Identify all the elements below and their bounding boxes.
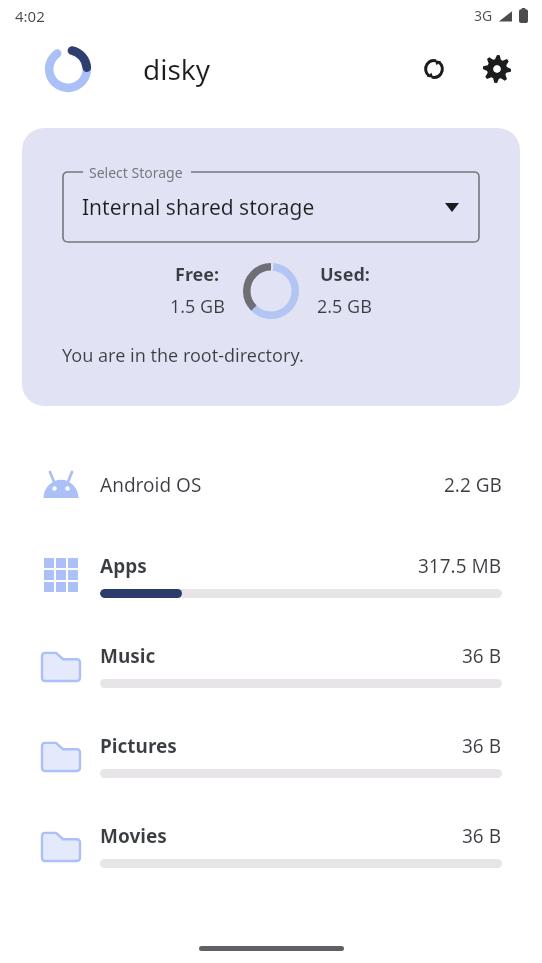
staticText: Internal shared storage	[82, 193, 315, 222]
staticText: Pictures	[100, 733, 177, 759]
staticText: 317.5 MB	[418, 553, 502, 579]
staticText: You are in the root-directory.	[62, 343, 304, 368]
button[interactable]: Apps	[0, 530, 542, 620]
staticText: Free:	[175, 262, 220, 287]
staticText: 36 B	[462, 733, 502, 759]
staticText: Used:	[320, 262, 370, 287]
staticText: 2.5 GB	[317, 294, 372, 319]
button[interactable]: Music	[0, 620, 542, 710]
button[interactable]: Refresh	[411, 46, 457, 92]
staticText: 36 B	[462, 823, 502, 849]
staticText: Movies	[100, 823, 167, 849]
staticText: Android OS	[100, 472, 202, 498]
staticText: Apps	[100, 553, 147, 579]
staticText: 1.5 GB	[170, 294, 225, 319]
button[interactable]: Android OS	[0, 440, 542, 530]
button[interactable]: Movies	[0, 800, 542, 890]
button[interactable]: Select Storage	[63, 172, 479, 242]
staticText: 3G	[474, 6, 493, 25]
staticText: Music	[100, 643, 156, 669]
staticText: 2.2 GB	[444, 472, 502, 498]
staticText: 36 B	[462, 643, 502, 669]
staticText: Select Storage	[89, 163, 183, 182]
button[interactable]: Select Storage	[22, 128, 520, 406]
button[interactable]: Pictures	[0, 710, 542, 800]
staticText: disky	[143, 50, 211, 88]
staticText: 4:02	[15, 6, 45, 26]
button[interactable]: Settings	[474, 46, 520, 92]
